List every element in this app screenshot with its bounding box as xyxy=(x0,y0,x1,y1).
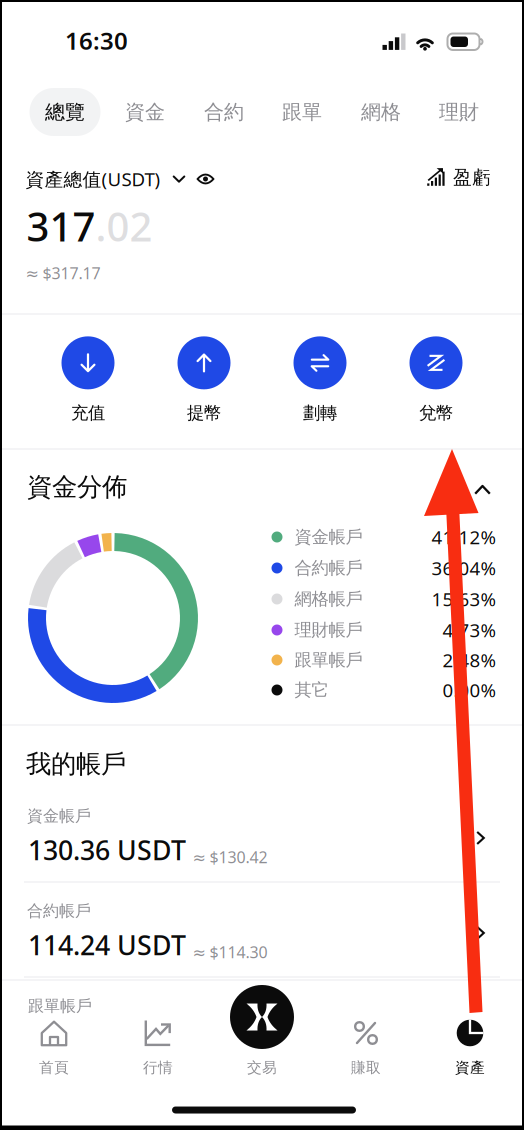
staticText: 總覽 xyxy=(45,100,85,124)
staticText: 資產 xyxy=(455,1058,485,1076)
staticText: 16:30 xyxy=(65,25,128,56)
button[interactable]: 劃轉 xyxy=(280,336,360,424)
button[interactable]: 盈虧 xyxy=(427,159,491,195)
staticText: 網格 xyxy=(361,100,401,124)
staticText: 其它 xyxy=(294,679,328,701)
staticText: 兌幣 xyxy=(419,402,453,424)
staticText: 36.04% xyxy=(431,556,496,580)
staticText: 資金帳戶 xyxy=(27,806,91,826)
button[interactable]: 首頁 xyxy=(2,992,106,1092)
button[interactable]: 合約帳戶 xyxy=(2,2,522,1125)
staticText: 網格帳戶 xyxy=(294,588,362,610)
staticText: 41.12% xyxy=(431,525,496,549)
staticText: 資金帳戶 xyxy=(294,526,362,548)
button[interactable]: 行情 xyxy=(106,992,210,1092)
staticText: 提幣 xyxy=(187,402,221,424)
button[interactable]: 資產總值(USDT) xyxy=(25,161,214,197)
staticText: 劃轉 xyxy=(303,402,337,424)
staticText: 317 xyxy=(26,199,95,252)
staticText: 跟單帳戶 xyxy=(28,996,92,1016)
staticText: .02 xyxy=(95,199,152,252)
staticText: 2.48% xyxy=(442,648,496,672)
button[interactable]: 總覽 xyxy=(29,88,100,136)
staticText: ≈ $114.30 xyxy=(192,941,267,963)
button[interactable]: 收合資金分佈 xyxy=(460,470,505,509)
staticText: 理財帳戶 xyxy=(294,619,362,641)
staticText: 理財 xyxy=(439,100,479,124)
button[interactable]: 交易 xyxy=(210,992,314,1092)
button[interactable]: 資金帳戶 xyxy=(2,2,522,1125)
staticText: 15.63% xyxy=(431,587,496,611)
button[interactable]: 資產 xyxy=(418,992,522,1092)
staticText: 資金 xyxy=(125,100,165,124)
button[interactable]: 跟單 xyxy=(267,88,337,136)
button[interactable]: 賺取 xyxy=(314,992,418,1092)
staticText: ≈ $317.17 xyxy=(25,262,100,284)
staticText: 賺取 xyxy=(351,1058,381,1076)
staticText: 0.00% xyxy=(442,678,496,702)
staticText: 130.36 USDT xyxy=(28,832,186,868)
staticText: 4.73% xyxy=(442,618,496,642)
staticText: 盈虧 xyxy=(453,166,491,189)
staticText: 資金分佈 xyxy=(27,471,127,502)
button[interactable]: 網格 xyxy=(346,88,416,136)
button[interactable]: 合約 xyxy=(189,88,259,136)
staticText: 合約帳戶 xyxy=(294,557,362,579)
button[interactable]: 理財 xyxy=(424,88,494,136)
button[interactable]: 資金 xyxy=(110,88,180,136)
staticText: 交易 xyxy=(247,1058,277,1076)
staticText: 跟單 xyxy=(282,100,322,124)
staticText: 114.24 USDT xyxy=(28,927,186,963)
staticText: 合約帳戶 xyxy=(27,901,91,921)
staticText: 跟單帳戶 xyxy=(294,649,362,671)
staticText: 我的帳戶 xyxy=(26,748,126,779)
staticText: 合約 xyxy=(204,100,244,124)
staticText: 充值 xyxy=(71,402,105,424)
staticText: 行情 xyxy=(143,1058,173,1076)
staticText: ≈ $130.42 xyxy=(192,846,267,868)
staticText: 首頁 xyxy=(39,1058,69,1076)
staticText: 資產總值(USDT) xyxy=(25,167,160,191)
button[interactable]: 充值 xyxy=(48,336,128,424)
button[interactable]: 兌幣 xyxy=(396,336,476,424)
button[interactable]: 提幣 xyxy=(164,336,244,424)
